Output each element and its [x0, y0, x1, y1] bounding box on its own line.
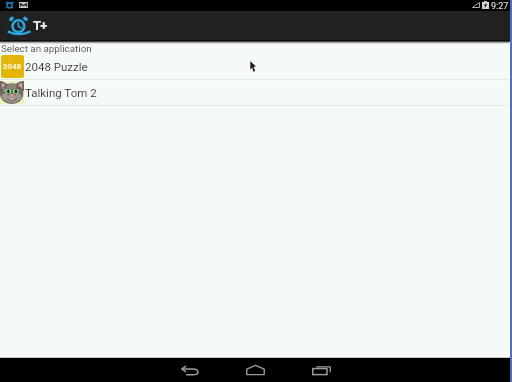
staticText: 9:27: [491, 1, 509, 12]
staticText: 2048 Puzzle: [25, 60, 88, 73]
staticText: T+: [33, 18, 47, 33]
staticText: 2048: [3, 62, 22, 71]
button[interactable]: Back: [170, 358, 208, 382]
button[interactable]: Home: [236, 358, 274, 382]
button[interactable]: Recent apps: [302, 358, 340, 382]
staticText: Talking Tom 2: [25, 86, 97, 99]
button[interactable]: Talking Tom 2: [0, 79, 512, 105]
button[interactable]: 2048: [0, 53, 512, 79]
staticText: Select an application: [1, 43, 92, 54]
